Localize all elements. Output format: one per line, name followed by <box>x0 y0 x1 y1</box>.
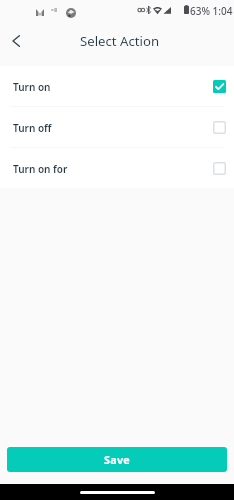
staticText: Turn on <box>13 80 51 94</box>
staticText: Select Action <box>80 32 160 50</box>
button[interactable]: Back <box>2 27 30 55</box>
button[interactable]: Turn on for <box>0 148 234 188</box>
staticText: Turn on for <box>13 162 68 176</box>
button[interactable]: Turn on <box>0 66 234 106</box>
button[interactable]: Save <box>7 447 227 472</box>
button[interactable]: Turn off <box>0 107 234 147</box>
staticText: Save <box>104 452 131 467</box>
staticText: Turn off <box>13 121 52 135</box>
staticText: 63% 1:04 <box>190 4 233 18</box>
